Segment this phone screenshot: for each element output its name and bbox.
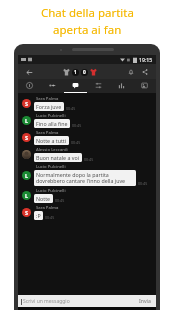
staticText: 1 (74, 69, 77, 76)
staticText: 00:45 (55, 198, 65, 203)
staticText: S (25, 209, 29, 216)
button[interactable]: Scrivi un messaggio (21, 298, 137, 305)
staticText: L (25, 117, 29, 124)
button[interactable]: Match (41, 79, 64, 92)
staticText: Normalmente dopo la partita dovrebbero c… (36, 171, 134, 185)
button[interactable]: Notifications (125, 66, 137, 78)
button[interactable]: L (20, 112, 154, 129)
staticText: Buon natale a voi (36, 154, 80, 161)
staticText: 0 (83, 69, 86, 76)
staticText: Fino alla fine (36, 120, 68, 127)
staticText: 00:45 (72, 123, 82, 128)
staticText: 00:45 (66, 106, 76, 111)
staticText: Sara Palma (36, 205, 59, 211)
staticText: Alessio Leccardi (36, 147, 68, 153)
staticText: Notte a tutti (36, 137, 67, 144)
button[interactable]: Back (23, 66, 35, 78)
staticText: Notte (36, 195, 51, 202)
staticText: Scrivi un messaggio (23, 298, 70, 305)
staticText: S (25, 100, 29, 107)
staticText: Sara Palma (36, 130, 59, 136)
button[interactable]: Alessio Leccardi (20, 146, 154, 163)
staticText: 19:15 (139, 56, 153, 63)
button[interactable]: Invia (137, 298, 153, 305)
staticText: Lucio Pulcinelli (36, 188, 66, 194)
staticText: Invia (139, 298, 151, 305)
staticText: Lucio Pulcinelli (36, 113, 66, 119)
button[interactable]: Lineup (87, 79, 110, 92)
staticText: 00:45 (45, 215, 55, 220)
button[interactable]: Photos (133, 79, 156, 92)
button[interactable]: Info (18, 79, 41, 92)
staticText: :P (36, 212, 41, 219)
button[interactable]: S (20, 95, 154, 112)
staticText: L (25, 192, 29, 199)
staticText: S (25, 134, 29, 141)
button[interactable]: Chat (64, 79, 87, 92)
staticText: aperta ai fan (53, 22, 122, 38)
staticText: Sara Palma (36, 96, 59, 102)
button[interactable]: L (20, 163, 154, 187)
button[interactable]: S (20, 129, 154, 146)
staticText: L (25, 172, 29, 179)
button[interactable]: S (20, 204, 154, 221)
button[interactable]: Share (139, 66, 151, 78)
staticText: 00:45 (138, 181, 148, 186)
button[interactable]: Statistics (110, 79, 133, 92)
button[interactable]: L (20, 187, 154, 204)
staticText: Forza juve (36, 103, 62, 110)
staticText: Chat della partita (41, 5, 134, 21)
staticText: 00:45 (84, 157, 94, 162)
staticText: 00:45 (71, 140, 81, 145)
staticText: Lucio Pulcinelli (36, 164, 66, 170)
